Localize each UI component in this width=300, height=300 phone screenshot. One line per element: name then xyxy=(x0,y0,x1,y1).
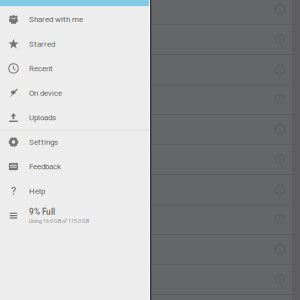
button[interactable]: Uploads xyxy=(0,105,149,130)
button[interactable]: On device xyxy=(0,81,149,105)
button[interactable]: Starred xyxy=(0,32,149,56)
button[interactable]: File info xyxy=(275,184,292,194)
staticText: 9% Full xyxy=(29,207,55,217)
staticText: ? xyxy=(11,185,16,197)
staticText: On device xyxy=(29,88,62,98)
staticText: Shared with me xyxy=(29,15,83,24)
staticText: Starred xyxy=(29,39,55,48)
button[interactable]: File info xyxy=(275,94,292,104)
staticText: Help xyxy=(29,186,45,196)
button[interactable]: File info xyxy=(275,154,292,164)
staticText: Settings xyxy=(29,137,58,147)
button[interactable]: File info xyxy=(275,4,292,14)
button[interactable]: Recent xyxy=(0,56,149,81)
staticText: Uploads xyxy=(29,113,56,122)
button[interactable]: 9% Full xyxy=(0,203,149,228)
button[interactable]: Shared with me xyxy=(0,7,149,32)
button[interactable]: File info xyxy=(275,244,292,254)
button[interactable]: File info xyxy=(275,214,292,224)
button[interactable]: Settings xyxy=(0,130,149,154)
button[interactable]: File info xyxy=(275,124,292,134)
button[interactable]: ? xyxy=(0,179,149,203)
staticText: Recent xyxy=(29,64,53,73)
button[interactable]: File info xyxy=(275,274,292,284)
button[interactable]: File info xyxy=(275,34,292,44)
staticText: Using 16.9 GB of 175.0 GB xyxy=(29,218,89,224)
button[interactable]: Feedback xyxy=(0,154,149,179)
button[interactable]: File info xyxy=(275,64,292,74)
staticText: Feedback xyxy=(29,162,61,171)
